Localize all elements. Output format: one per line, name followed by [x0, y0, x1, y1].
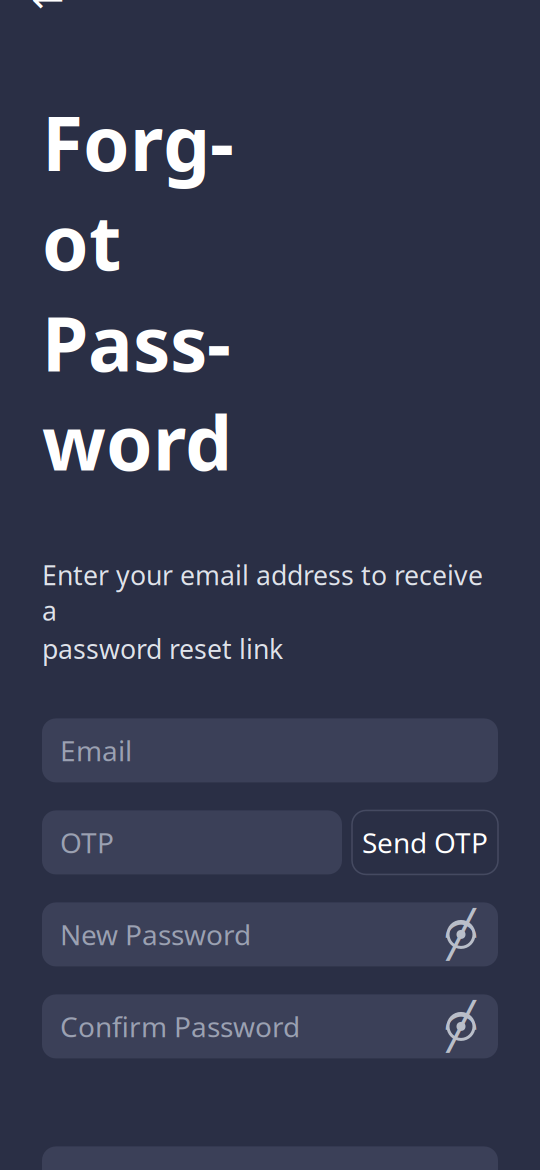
button[interactable]: Back	[26, 0, 70, 21]
staticText: Send OTP	[362, 824, 488, 861]
button[interactable]: Show Confirm Password	[442, 1007, 480, 1045]
staticText: password reset link	[42, 631, 283, 666]
staticText: Email	[60, 732, 132, 769]
button[interactable]: Show New Password	[442, 915, 480, 953]
staticText: ◠	[443, 1004, 478, 1049]
staticText: ◠	[443, 912, 478, 957]
staticText: Password	[42, 293, 232, 491]
staticText: New Password	[60, 916, 251, 953]
staticText: ╱	[447, 1001, 474, 1052]
staticText: ╱	[447, 909, 474, 960]
staticText: Confirm Password	[60, 1008, 300, 1045]
staticText: Forgot	[42, 93, 234, 291]
staticText: ←	[31, 0, 65, 21]
button[interactable]: Send OTP	[352, 810, 498, 874]
staticText: OTP	[60, 824, 114, 861]
staticText: Enter your email address to receive a	[42, 557, 483, 628]
